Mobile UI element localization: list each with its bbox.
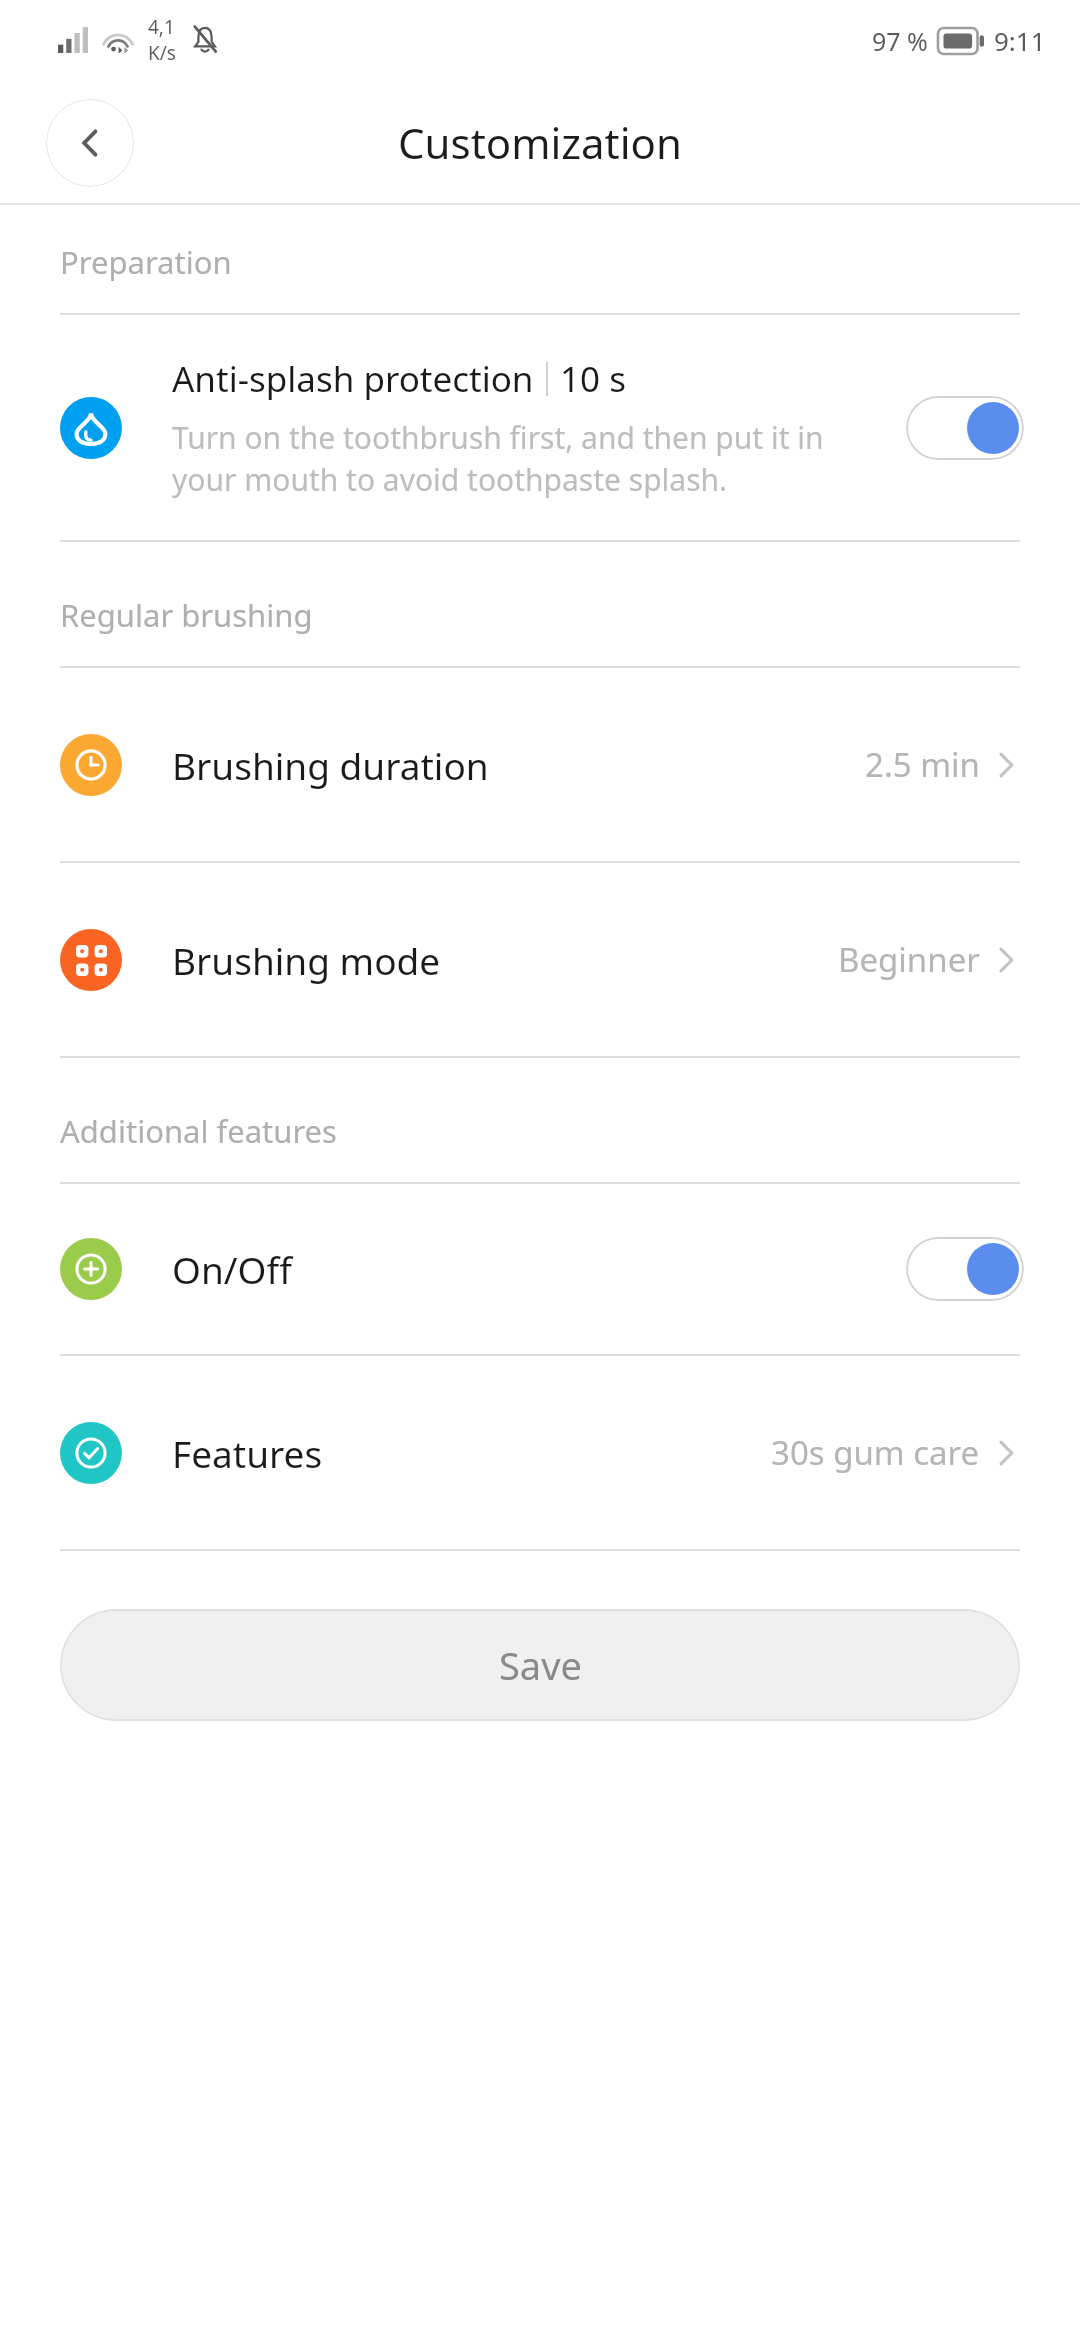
staticText: Save (499, 1639, 582, 1691)
button[interactable]: Anti-splash protection (0, 315, 1080, 540)
staticText: 4,1 (148, 14, 175, 40)
button[interactable]: Toggle (906, 1237, 1024, 1301)
button[interactable]: Brushing duration (0, 668, 1080, 861)
staticText: 10 s (560, 355, 626, 403)
button[interactable]: Toggle (906, 396, 1024, 460)
staticText: 97 % (872, 24, 928, 58)
staticText: Additional features (60, 1110, 337, 1152)
staticText: Anti-splash protection (172, 355, 534, 403)
staticText: Customization (398, 114, 682, 171)
staticText: 2.5 min (865, 742, 980, 787)
staticText: Brushing duration (172, 740, 865, 790)
button[interactable]: Features (0, 1356, 1080, 1549)
staticText: 9:11 (994, 23, 1046, 58)
button[interactable]: Brushing mode (0, 863, 1080, 1056)
button[interactable]: Back (46, 99, 134, 187)
button[interactable]: Save (60, 1609, 1020, 1721)
staticText: On/Off (172, 1244, 906, 1294)
staticText: Preparation (60, 241, 232, 283)
button[interactable]: On/Off (0, 1184, 1080, 1354)
staticText: Brushing mode (172, 935, 838, 985)
staticText: Beginner (838, 937, 980, 982)
staticText: Turn on the toothbrush first, and then p… (172, 417, 888, 500)
staticText: Features (172, 1428, 771, 1478)
staticText: 30s gum care (771, 1430, 980, 1475)
staticText: Regular brushing (60, 594, 313, 636)
staticText: K/s (148, 40, 176, 66)
